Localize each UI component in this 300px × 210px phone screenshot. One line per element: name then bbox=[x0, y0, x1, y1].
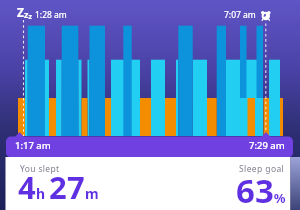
button[interactable]: You slept bbox=[5, 157, 291, 210]
staticText: 7:07 am bbox=[224, 9, 256, 21]
staticText: 4h 27m bbox=[18, 166, 99, 208]
button[interactable]: 1:17 am bbox=[6, 136, 293, 157]
staticText: 63% bbox=[236, 168, 286, 210]
staticText: Sleep goal bbox=[239, 163, 285, 175]
staticText: 1:17 am bbox=[15, 139, 51, 152]
staticText: 7:29 am bbox=[249, 139, 285, 152]
staticText: You slept bbox=[20, 163, 60, 175]
staticText: 1:28 am bbox=[35, 9, 67, 21]
staticText: Zzz bbox=[17, 4, 32, 21]
